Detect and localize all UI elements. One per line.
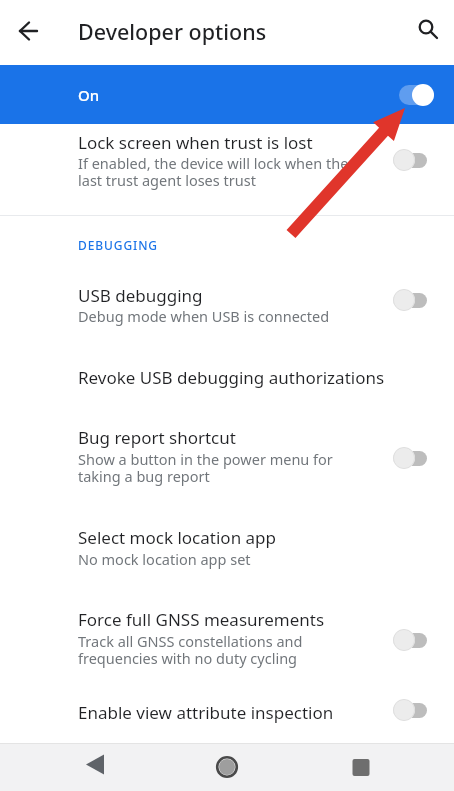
staticText: Show a button in the power menu for taki… [78, 449, 333, 486]
staticText: No mock location app set [78, 549, 251, 569]
button[interactable]: Lock screen when trust is lost [0, 124, 454, 215]
staticText: On [78, 85, 100, 105]
button[interactable]: Revoke USB debugging authorizations [0, 358, 454, 398]
button[interactable] [213, 753, 241, 781]
button[interactable] [414, 15, 440, 41]
staticText: Developer options [78, 17, 267, 46]
button[interactable]: Bug report shortcut [0, 418, 454, 498]
staticText: If enabled, the device will lock when th… [78, 153, 349, 190]
button[interactable]: Enable view attribute inspection [0, 693, 454, 733]
button[interactable] [83, 753, 111, 781]
button[interactable]: Force full GNSS measurements [0, 600, 454, 680]
button[interactable] [347, 753, 375, 781]
staticText: Select mock location app [78, 526, 276, 549]
staticText: Track all GNSS constellations and freque… [78, 631, 303, 668]
button[interactable]: Select mock location app [0, 518, 454, 580]
staticText: Revoke USB debugging authorizations [78, 366, 385, 389]
staticText: Lock screen when trust is lost [78, 131, 313, 154]
staticText: Force full GNSS measurements [78, 608, 325, 631]
staticText: Enable view attribute inspection [78, 701, 334, 724]
button[interactable] [15, 19, 39, 43]
button[interactable]: USB debugging [0, 276, 454, 338]
staticText: Bug report shortcut [78, 426, 236, 449]
button[interactable]: On [0, 65, 454, 124]
staticText: Debug mode when USB is connected [78, 306, 330, 326]
staticText: USB debugging [78, 284, 203, 307]
staticText: DEBUGGING [78, 237, 158, 253]
